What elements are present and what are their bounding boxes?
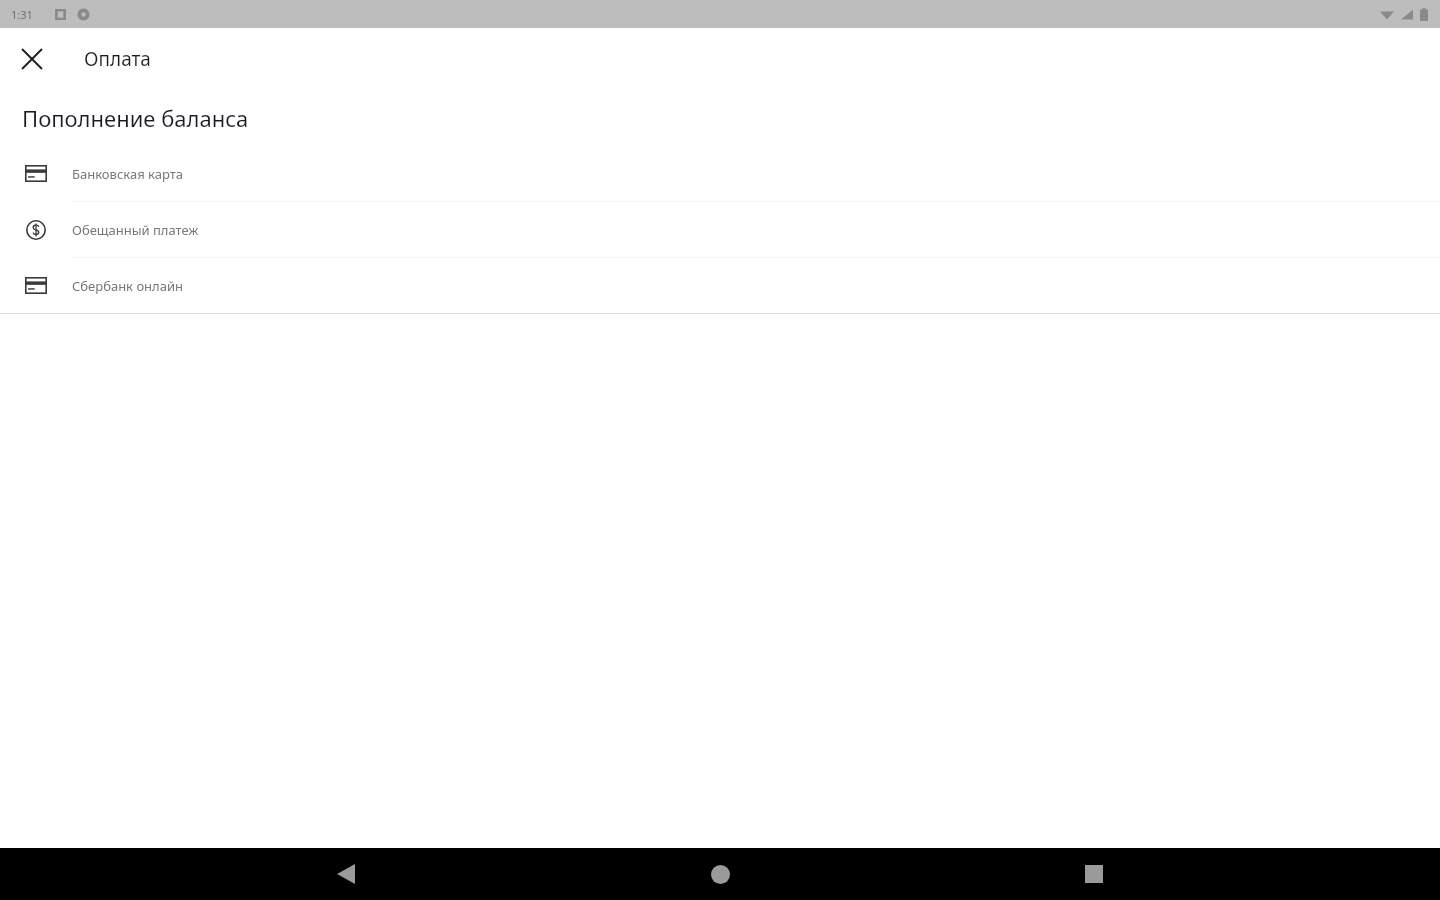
button[interactable]: Обещанный платеж [0, 202, 1440, 257]
button[interactable]: Сбербанк онлайн [0, 258, 1440, 313]
staticText: 1:31 [11, 7, 33, 22]
button[interactable]: Закрыть [10, 37, 54, 81]
staticText: Оплата [84, 46, 151, 72]
button[interactable]: Недавние приложения [1066, 848, 1122, 900]
staticText: Обещанный платеж [72, 221, 199, 239]
button[interactable]: Назад [318, 848, 374, 900]
button[interactable]: Домой [692, 848, 748, 900]
staticText: Пополнение баланса [22, 103, 249, 133]
staticText: Банковская карта [72, 165, 183, 183]
staticText: Сбербанк онлайн [72, 277, 184, 295]
button[interactable]: Банковская карта [0, 146, 1440, 201]
